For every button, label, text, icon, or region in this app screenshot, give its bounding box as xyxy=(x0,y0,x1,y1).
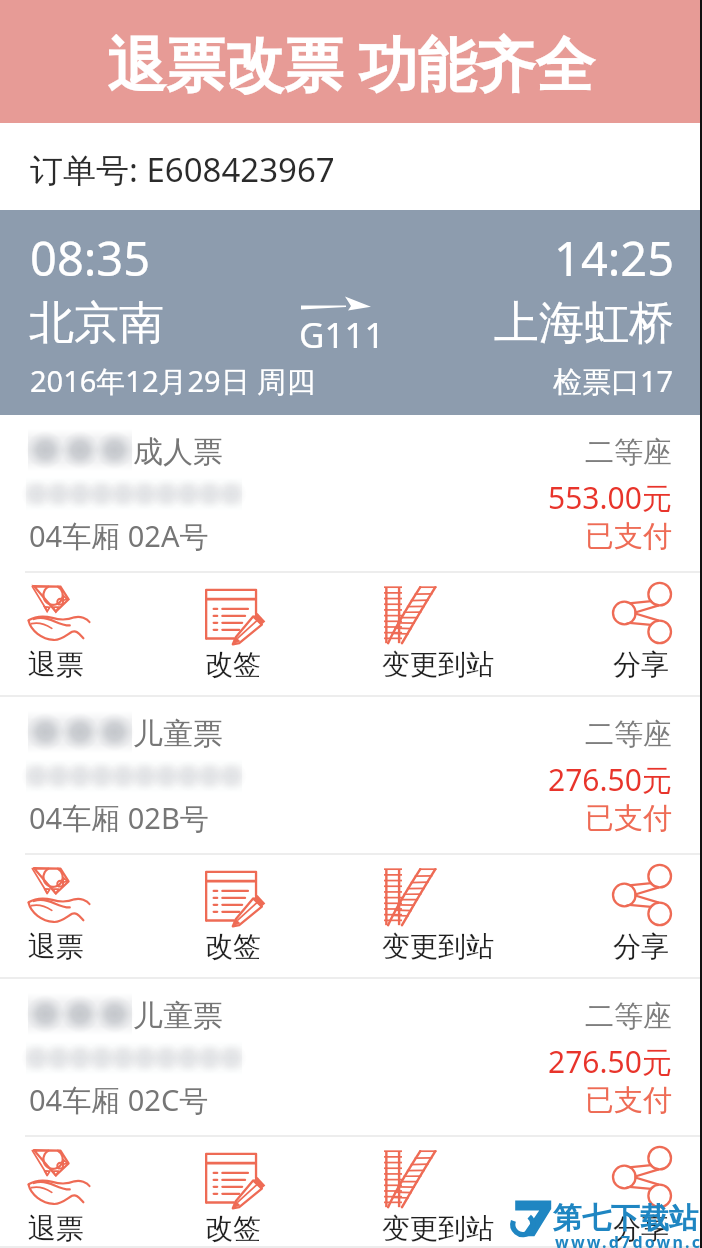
button[interactable]: 改签 Change ticket xyxy=(205,866,263,964)
button[interactable]: 变更到站 Change destination xyxy=(382,1148,494,1246)
button[interactable]: 分享 Share xyxy=(613,584,671,682)
button[interactable]: 分享 Share xyxy=(613,866,671,964)
button[interactable]: 退票 Refund ticket xyxy=(28,866,86,964)
staticText: 二等座 xyxy=(585,998,672,1035)
staticText: 分享 xyxy=(613,1211,669,1246)
button[interactable]: 儿童票 xyxy=(0,979,702,1135)
staticText: 儿童票 xyxy=(133,715,223,753)
staticText: G111 xyxy=(299,311,385,359)
staticText: 改签 xyxy=(205,929,261,964)
staticText: 二等座 xyxy=(585,434,672,471)
staticText: 成人票 xyxy=(133,433,223,471)
staticText: 04车厢 02B号 xyxy=(29,798,209,838)
staticText: 北京南 xyxy=(29,295,164,352)
button[interactable]: 分享 Share xyxy=(613,1148,671,1246)
staticText: 退票改票 功能齐全 xyxy=(107,23,595,104)
button[interactable]: 变更到站 Change destination xyxy=(382,866,494,964)
staticText: 已支付 xyxy=(585,1082,672,1119)
staticText: 退票 xyxy=(28,647,84,682)
staticText: 变更到站 xyxy=(382,647,494,682)
staticText: 检票口17 xyxy=(553,361,674,401)
staticText: 04车厢 02A号 xyxy=(29,516,209,556)
staticText: 改签 xyxy=(205,647,261,682)
staticText: 2016年12月29日 周四 xyxy=(30,361,316,401)
staticText: 分享 xyxy=(613,929,669,964)
staticText: 订单号: E608423967 xyxy=(30,147,335,192)
staticText: 已支付 xyxy=(585,800,672,837)
staticText: 退票 xyxy=(28,1211,84,1246)
staticText: 553.00元 xyxy=(548,477,672,518)
staticText: 276.50元 xyxy=(548,759,672,800)
staticText: 08:35 xyxy=(30,226,151,290)
staticText: 276.50元 xyxy=(548,1041,672,1082)
staticText: 退票 xyxy=(28,929,84,964)
button[interactable]: 退票 Refund ticket xyxy=(28,1148,86,1246)
staticText: 二等座 xyxy=(585,716,672,753)
button[interactable]: 改签 Change ticket xyxy=(205,1148,263,1246)
button[interactable]: 变更到站 Change destination xyxy=(382,584,494,682)
staticText: 儿童票 xyxy=(133,997,223,1035)
button[interactable]: 儿童票 xyxy=(0,697,702,853)
staticText: 上海虹桥 xyxy=(494,295,674,352)
button[interactable]: 成人票 xyxy=(0,415,702,571)
staticText: 分享 xyxy=(613,647,669,682)
staticText: 04车厢 02C号 xyxy=(29,1080,209,1120)
staticText: 变更到站 xyxy=(382,929,494,964)
staticText: www.d7down.com xyxy=(555,1231,702,1248)
button[interactable]: 改签 Change ticket xyxy=(205,584,263,682)
button[interactable]: 退票 Refund ticket xyxy=(28,584,86,682)
staticText: 改签 xyxy=(205,1211,261,1246)
staticText: 第七下载站 xyxy=(553,1200,698,1237)
staticText: 14:25 xyxy=(554,226,675,290)
staticText: 变更到站 xyxy=(382,1211,494,1246)
staticText: 已支付 xyxy=(585,518,672,555)
